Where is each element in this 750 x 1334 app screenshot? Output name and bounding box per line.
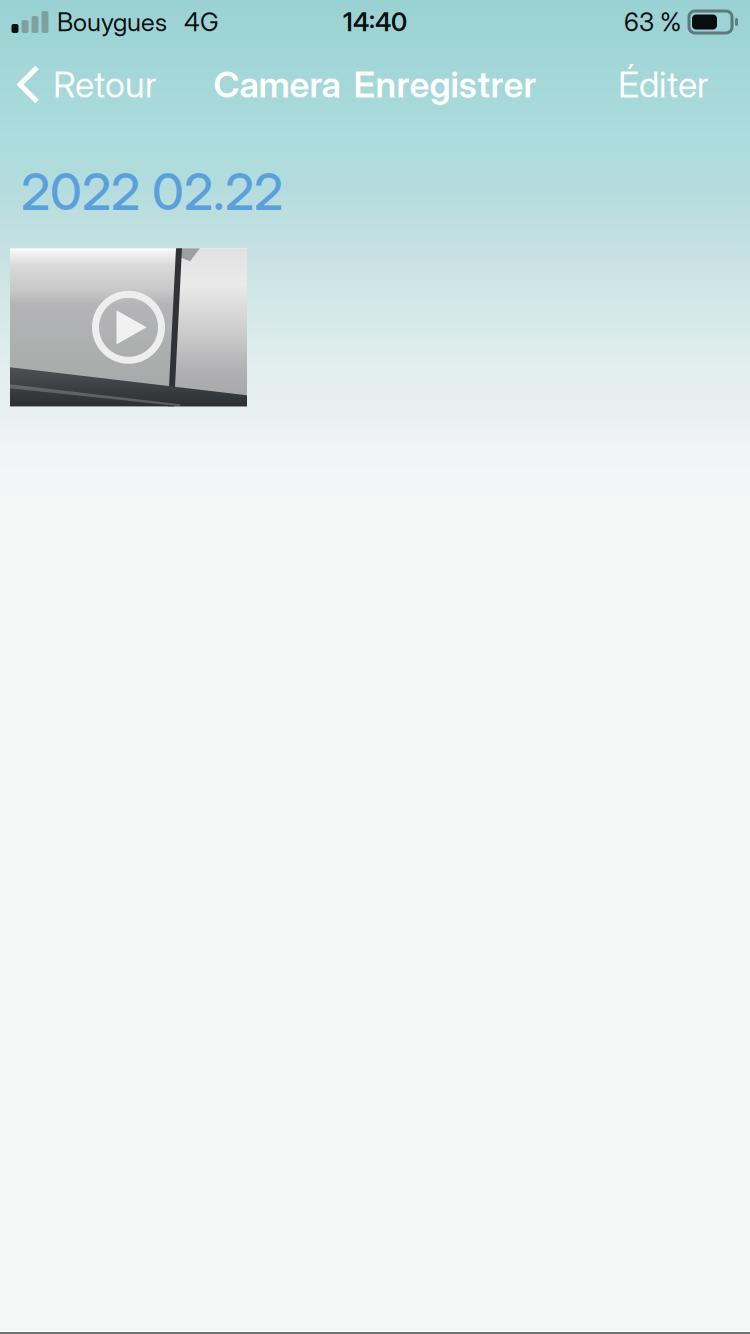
staticText: Bouygues xyxy=(57,7,167,37)
staticText: Retour xyxy=(53,63,157,106)
staticText: Camera Enregistrer xyxy=(213,63,536,106)
staticText: Éditer xyxy=(618,63,709,106)
staticText: 14:40 xyxy=(343,7,407,37)
staticText: 4G xyxy=(184,7,219,37)
button[interactable]: Lire la vidéo xyxy=(10,248,247,406)
staticText: 2022 02.22 xyxy=(21,161,283,222)
button[interactable]: Retour xyxy=(0,42,171,127)
button[interactable]: Éditer xyxy=(602,42,750,127)
staticText: 63 % xyxy=(624,7,681,37)
